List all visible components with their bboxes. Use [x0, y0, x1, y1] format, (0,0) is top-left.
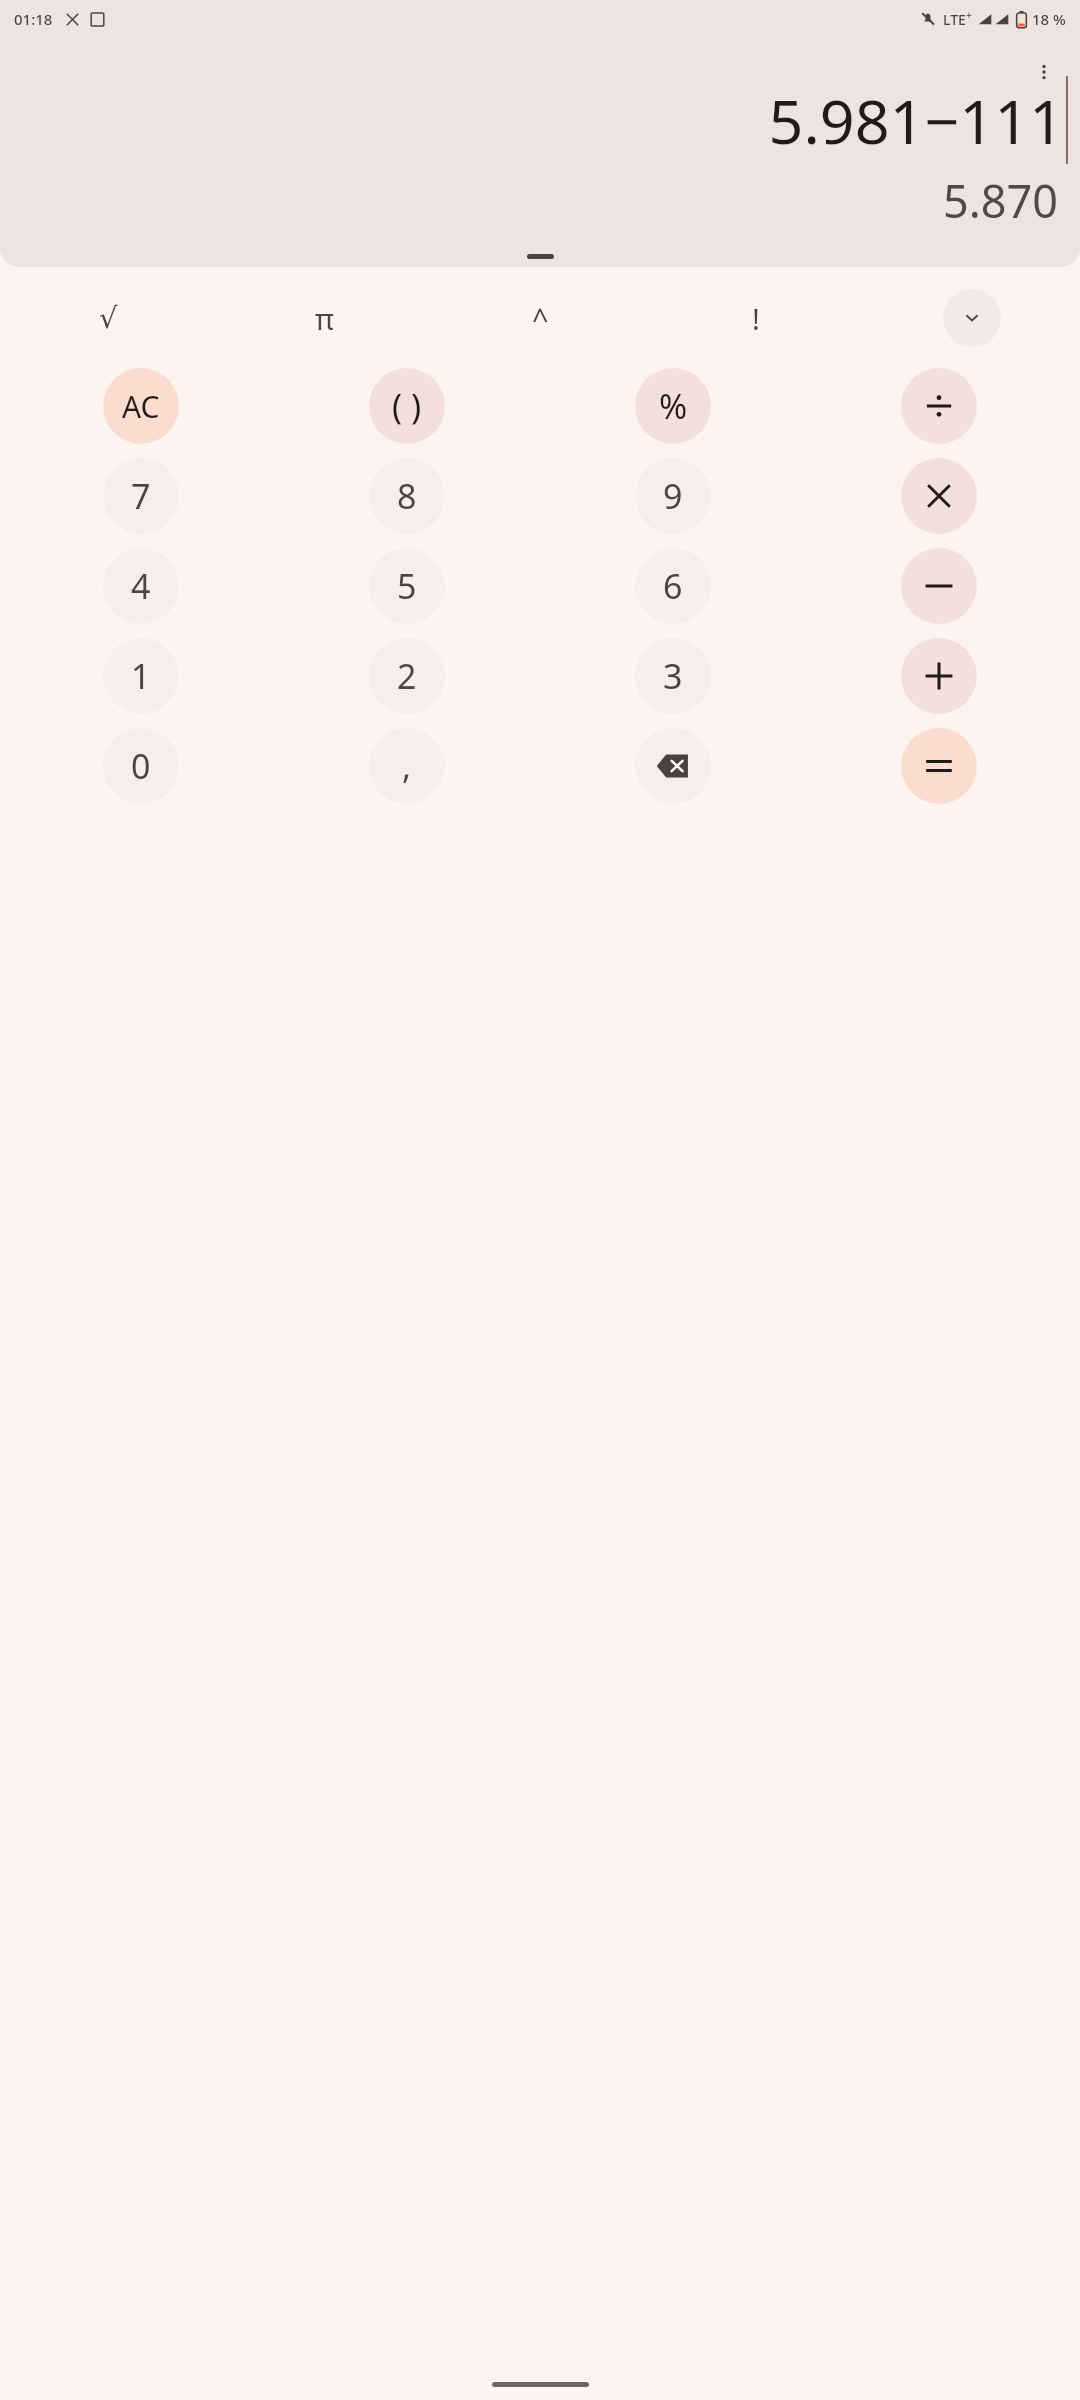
- staticText: 8: [397, 473, 417, 519]
- button[interactable]: ,: [369, 728, 445, 804]
- button[interactable]: 2: [369, 638, 445, 714]
- button[interactable]: AC: [103, 368, 179, 444]
- button[interactable]: [901, 548, 977, 624]
- button[interactable]: Backspace: [635, 728, 711, 804]
- staticText: 5.981−111: [768, 79, 1064, 162]
- staticText: 4: [131, 563, 151, 609]
- button[interactable]: Show more functions: [943, 289, 1001, 347]
- staticText: √: [99, 301, 118, 335]
- staticText: 2: [397, 653, 417, 699]
- button[interactable]: More options: [1020, 48, 1068, 96]
- staticText: 6: [663, 563, 683, 609]
- staticText: %: [659, 383, 688, 429]
- button[interactable]: 7: [103, 458, 179, 534]
- staticText: 5: [397, 563, 417, 609]
- staticText: 18 %: [1032, 9, 1066, 29]
- staticText: 1: [131, 653, 151, 699]
- staticText: !: [752, 299, 760, 338]
- button[interactable]: !: [648, 287, 864, 349]
- staticText: ( ): [392, 383, 422, 429]
- staticText: π: [315, 299, 334, 338]
- button[interactable]: %: [635, 368, 711, 444]
- staticText: +: [966, 8, 972, 22]
- staticText: 5.870: [14, 170, 1058, 231]
- button[interactable]: π: [216, 287, 432, 349]
- button[interactable]: 3: [635, 638, 711, 714]
- staticText: LTE: [943, 10, 966, 29]
- button[interactable]: 6: [635, 548, 711, 624]
- button[interactable]: ( ): [369, 368, 445, 444]
- button[interactable]: [901, 368, 977, 444]
- staticText: 01:18: [14, 9, 53, 29]
- button[interactable]: 4: [103, 548, 179, 624]
- button[interactable]: 0: [103, 728, 179, 804]
- button[interactable]: 8: [369, 458, 445, 534]
- button[interactable]: ^: [432, 287, 648, 349]
- button[interactable]: 1: [103, 638, 179, 714]
- button[interactable]: [527, 254, 554, 259]
- button[interactable]: [901, 458, 977, 534]
- button[interactable]: [901, 638, 977, 714]
- button[interactable]: 5: [369, 548, 445, 624]
- staticText: ^: [532, 299, 549, 338]
- button[interactable]: [901, 728, 977, 804]
- button[interactable]: 9: [635, 458, 711, 534]
- staticText: 7: [131, 473, 151, 519]
- button[interactable]: √: [0, 287, 216, 349]
- staticText: 3: [663, 653, 683, 699]
- staticText: AC: [122, 386, 160, 427]
- staticText: 9: [663, 473, 683, 519]
- staticText: 0: [131, 743, 151, 789]
- staticText: ,: [402, 743, 412, 789]
